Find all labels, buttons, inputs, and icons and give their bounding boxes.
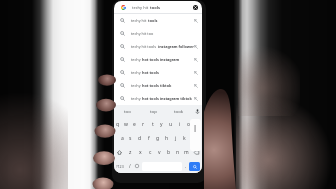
button[interactable]: f — [144, 131, 153, 145]
button[interactable]: Backspace — [191, 145, 202, 159]
button[interactable]: y — [157, 117, 166, 131]
staticText: i — [179, 121, 181, 128]
staticText: a — [121, 135, 124, 142]
button[interactable]: techy hit tools — [114, 40, 202, 53]
button[interactable]: z — [125, 145, 135, 159]
button[interactable]: q — [114, 117, 122, 131]
button[interactable]: techy — [114, 92, 202, 105]
button[interactable]: top — [140, 105, 166, 117]
staticText: x — [139, 149, 142, 156]
button[interactable]: h — [162, 131, 171, 145]
button[interactable]: o — [184, 117, 193, 131]
button[interactable]: ?123 — [114, 159, 126, 173]
staticText: c — [149, 149, 152, 156]
staticText: k — [183, 135, 186, 142]
staticText: hot tools instagram tiktok — [142, 96, 192, 101]
staticText: took — [174, 108, 184, 114]
staticText: u — [169, 121, 173, 128]
staticText: hot tools instagram — [142, 57, 180, 62]
staticText: ?123 — [116, 164, 124, 169]
staticText: techy — [131, 70, 142, 75]
button[interactable]: Shift — [114, 145, 125, 159]
button[interactable]: s — [126, 131, 135, 145]
button[interactable]: . — [183, 159, 189, 173]
button[interactable]: Clear query — [193, 5, 198, 10]
button[interactable]: d — [135, 131, 144, 145]
staticText: l — [194, 123, 197, 134]
button[interactable]: k — [180, 131, 189, 145]
button[interactable]: too — [114, 105, 140, 117]
button[interactable]: u — [166, 117, 175, 131]
button[interactable]: j — [171, 131, 180, 145]
staticText: y — [160, 121, 163, 128]
staticText: w — [124, 121, 128, 128]
staticText: techy hit — [131, 18, 148, 23]
button[interactable]: r — [139, 117, 148, 131]
staticText: top — [150, 108, 157, 114]
staticText: tools — [150, 5, 160, 10]
button[interactable]: b — [164, 145, 173, 159]
button[interactable]: x — [135, 145, 145, 159]
button[interactable]: techy — [114, 79, 202, 92]
button[interactable]: i — [175, 117, 184, 131]
staticText: tools — [148, 18, 158, 23]
staticText: s — [129, 135, 132, 142]
button[interactable]: t — [148, 117, 157, 131]
button[interactable]: e — [130, 117, 139, 131]
staticText: b — [167, 149, 171, 156]
button[interactable]: techy hit too — [114, 27, 202, 40]
button[interactable]: Search — [189, 162, 200, 171]
staticText: . — [185, 163, 187, 169]
staticText: / — [129, 163, 131, 169]
staticText: techy — [131, 83, 142, 88]
staticText: j — [175, 135, 177, 142]
button[interactable]: Voice input — [192, 105, 202, 117]
button[interactable]: n — [173, 145, 182, 159]
staticText: instagram followers — [158, 44, 194, 49]
button[interactable]: c — [145, 145, 155, 159]
staticText: h — [165, 135, 169, 142]
staticText: techy hit tools — [131, 44, 158, 49]
button[interactable]: techy hit — [114, 1, 202, 13]
staticText: z — [129, 149, 132, 156]
staticText: too — [124, 108, 131, 114]
button[interactable]: l — [189, 131, 198, 145]
staticText: q — [116, 121, 120, 128]
staticText: o — [187, 121, 191, 128]
button[interactable]: w — [122, 117, 130, 131]
staticText: g — [156, 135, 160, 142]
staticText: n — [176, 149, 180, 156]
button[interactable]: techy hit — [114, 14, 202, 27]
staticText: r — [142, 121, 145, 128]
staticText: m — [184, 149, 189, 156]
button[interactable]: p — [193, 117, 202, 131]
button[interactable]: v — [155, 145, 164, 159]
button[interactable]: Emoji — [133, 159, 141, 173]
button[interactable]: m — [182, 145, 191, 159]
button[interactable]: a — [118, 131, 126, 145]
button[interactable]: took — [166, 105, 192, 117]
staticText: techy hit too — [131, 31, 154, 36]
staticText: techy — [131, 96, 142, 101]
button[interactable]: / — [126, 159, 133, 173]
button[interactable]: techy — [114, 53, 202, 66]
staticText: v — [158, 149, 161, 156]
button[interactable]: techy — [114, 66, 202, 79]
staticText: techy — [131, 57, 142, 62]
staticText: t — [152, 121, 154, 128]
staticText: d — [138, 135, 142, 142]
staticText: techy hit — [132, 5, 150, 10]
staticText: hot tools tiktok — [142, 83, 172, 88]
staticText: f — [148, 135, 150, 142]
button[interactable]: g — [153, 131, 162, 145]
staticText: hot tools — [142, 70, 159, 75]
staticText: e — [133, 121, 136, 128]
